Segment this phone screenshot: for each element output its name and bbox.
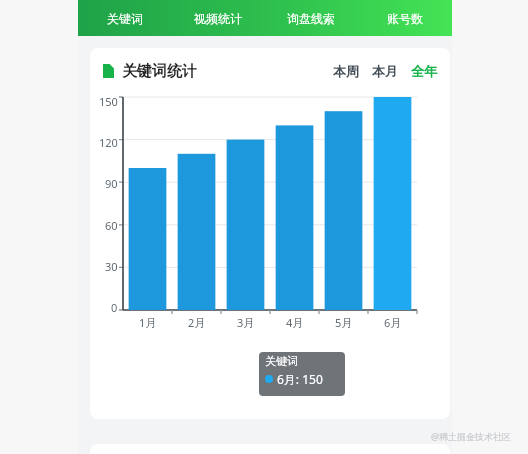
staticText: 120 — [99, 135, 118, 150]
staticText: 60 — [105, 218, 118, 233]
staticText: 0 — [111, 300, 118, 315]
button[interactable]: 关键词 — [78, 0, 171, 36]
staticText: 6月: 150 — [277, 371, 323, 387]
staticText: 4月 — [286, 315, 304, 330]
staticText: 2月 — [188, 315, 206, 330]
staticText: 150 — [99, 94, 118, 109]
button[interactable]: 视频统计 — [171, 0, 264, 36]
staticText: 3月 — [237, 315, 255, 330]
staticText: 30 — [105, 259, 118, 274]
staticText: 本月 — [372, 63, 398, 79]
other: Report — [103, 64, 114, 78]
staticText: 关键词统计 — [122, 62, 197, 81]
button[interactable]: 全年 — [411, 63, 437, 79]
button[interactable]: 本周 — [333, 63, 359, 79]
staticText: 账号数 — [387, 11, 423, 26]
button[interactable]: 账号数 — [358, 0, 452, 36]
staticText: 关键词 — [107, 11, 143, 26]
staticText: @稀土掘金技术社区 — [431, 430, 512, 442]
button[interactable]: 询盘线索 — [264, 0, 358, 36]
staticText: 询盘线索 — [287, 11, 335, 26]
staticText: 视频统计 — [194, 11, 242, 26]
staticText: 关键词 — [265, 354, 298, 368]
button[interactable]: 本月 — [372, 63, 398, 79]
staticText: 本周 — [333, 63, 359, 79]
staticText: 90 — [105, 176, 118, 191]
staticText: 1月 — [139, 315, 157, 330]
staticText: 6月 — [384, 315, 402, 330]
staticText: 5月 — [335, 315, 353, 330]
staticText: 全年 — [411, 63, 437, 79]
